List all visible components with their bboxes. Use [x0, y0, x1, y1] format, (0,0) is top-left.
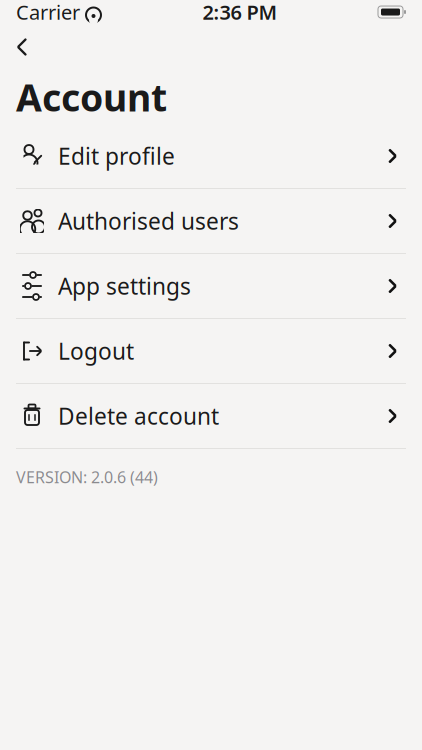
- staticText: Edit profile: [58, 141, 175, 171]
- staticText: Authorised users: [58, 206, 239, 236]
- button[interactable]: Authorised users: [0, 189, 422, 253]
- button[interactable]: Delete account: [0, 384, 422, 448]
- button[interactable]: Back: [0, 25, 44, 69]
- button[interactable]: App settings: [0, 254, 422, 318]
- staticText: Logout: [58, 336, 134, 366]
- staticText: 2:36 PM: [202, 0, 277, 25]
- staticText: VERSION: 2.0.6 (44): [16, 466, 158, 488]
- button[interactable]: Logout: [0, 319, 422, 383]
- button[interactable]: Edit profile: [0, 124, 422, 188]
- staticText: App settings: [58, 271, 191, 301]
- staticText: Delete account: [58, 401, 219, 431]
- staticText: Carrier: [16, 0, 80, 25]
- staticText: Account: [16, 72, 167, 122]
